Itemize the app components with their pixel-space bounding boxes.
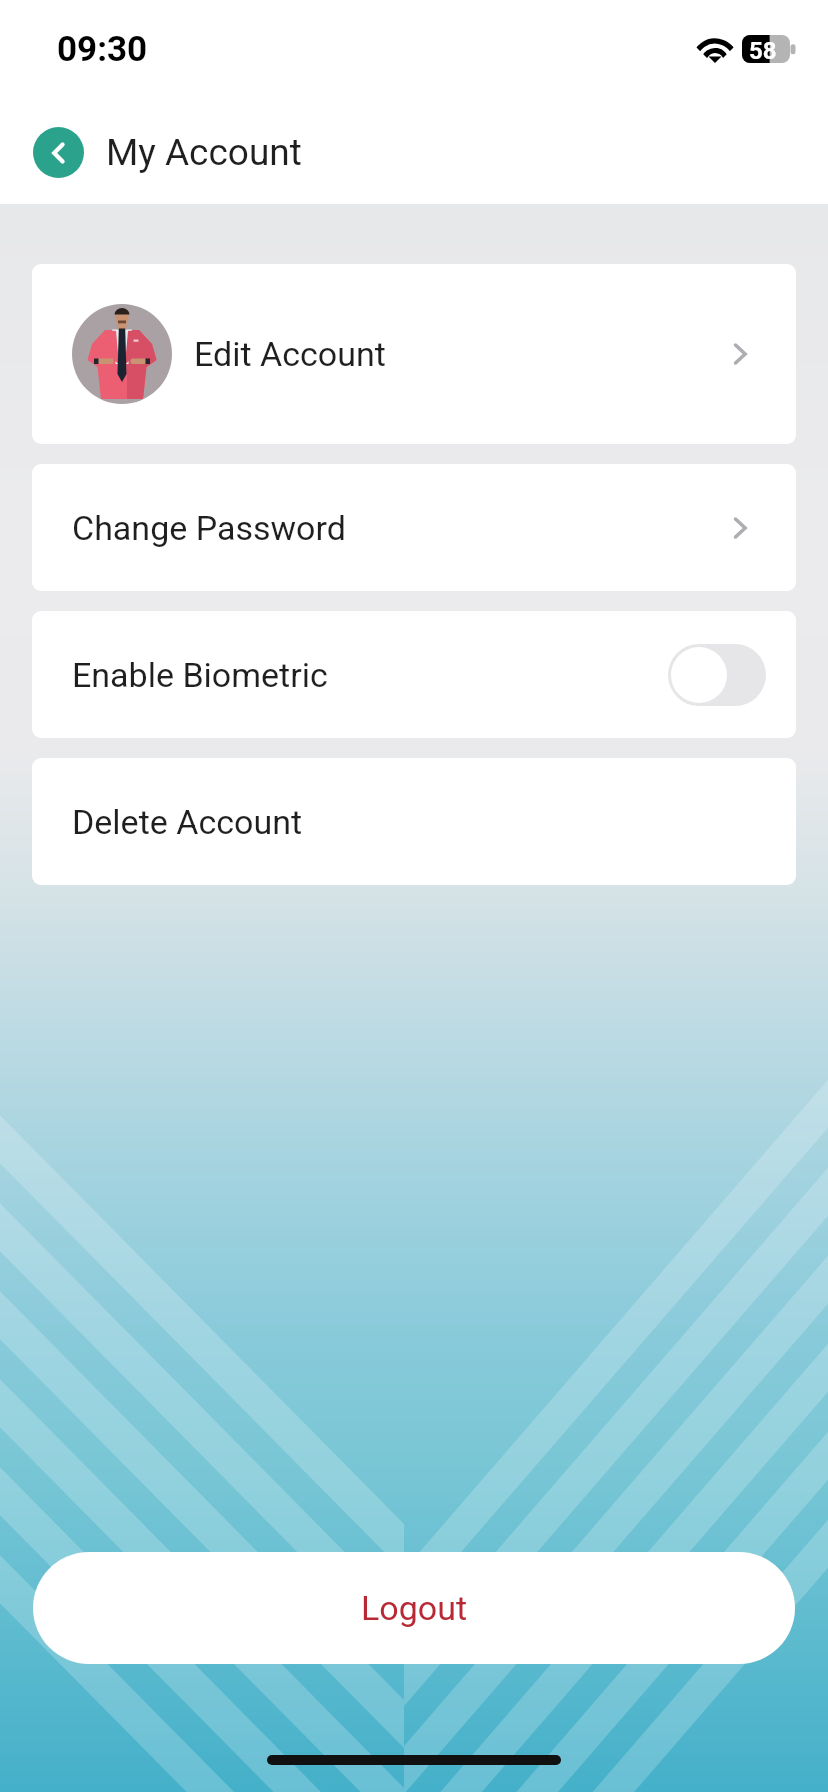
- button[interactable]: Back: [33, 127, 84, 178]
- staticText: Change Password: [72, 508, 346, 548]
- staticText: Edit Account: [194, 334, 386, 374]
- staticText: 58: [749, 37, 777, 65]
- button[interactable]: Change Password: [32, 464, 796, 591]
- staticText: Enable Biometric: [72, 655, 328, 695]
- button[interactable]: Enable Biometric toggle: [668, 644, 766, 706]
- other: Open: [724, 338, 756, 370]
- staticText: Logout: [361, 1588, 468, 1628]
- button[interactable]: Delete Account: [32, 758, 796, 885]
- staticText: Delete Account: [72, 802, 303, 842]
- button[interactable]: Edit Account: [32, 264, 796, 444]
- staticText: My Account: [106, 131, 302, 174]
- button[interactable]: Logout: [33, 1552, 795, 1664]
- button[interactable]: Enable Biometric: [32, 611, 796, 738]
- other: Open: [724, 512, 756, 544]
- staticText: 09:30: [57, 29, 148, 70]
